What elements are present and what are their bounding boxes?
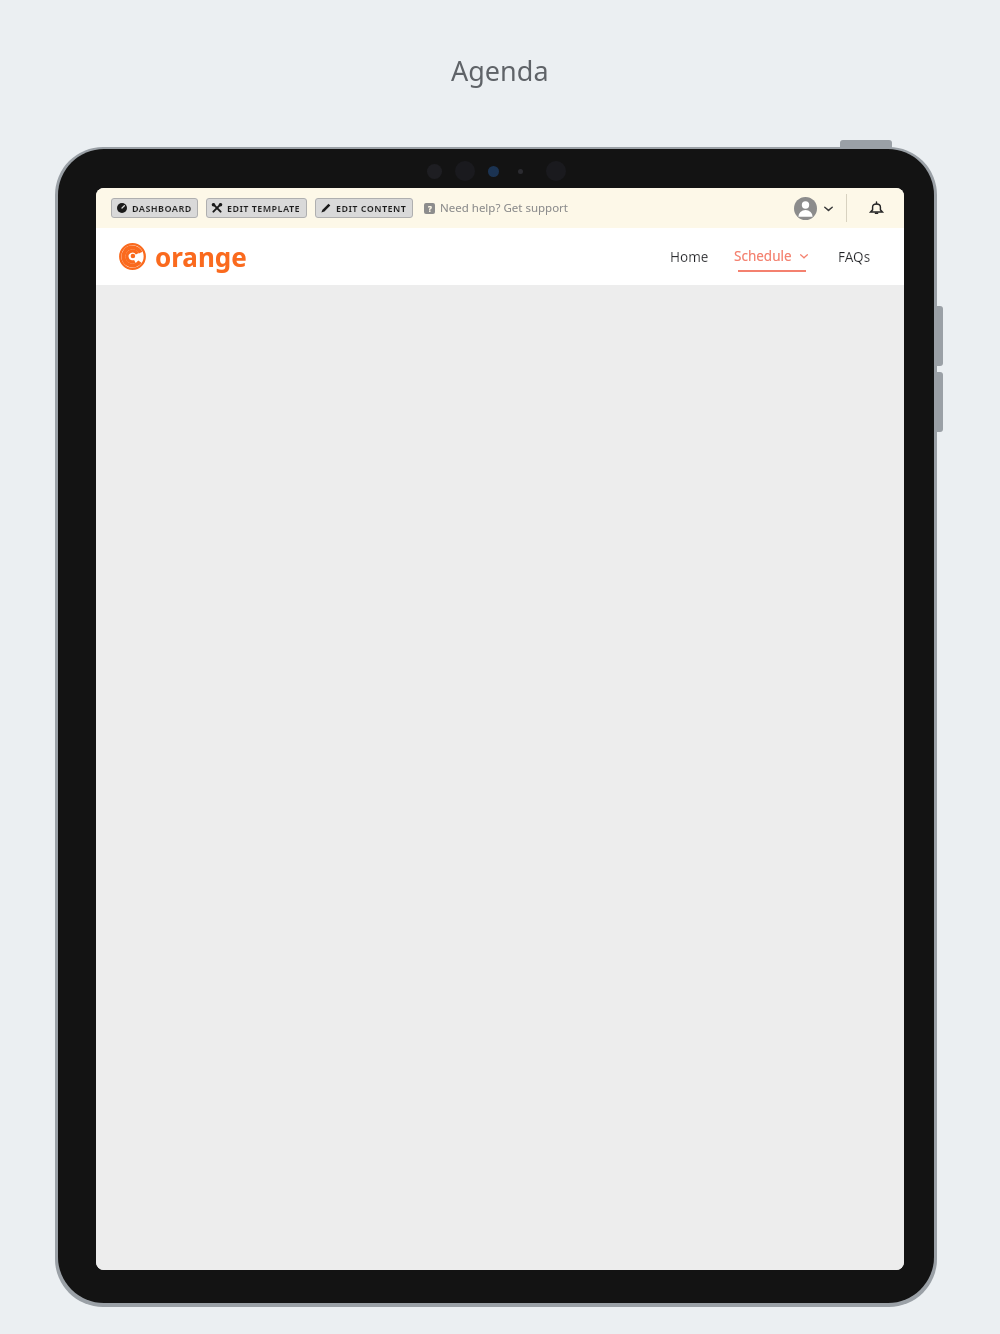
button[interactable]: ? xyxy=(424,200,569,216)
button[interactable]: Account menu xyxy=(794,197,834,220)
button[interactable]: Notifications xyxy=(863,195,889,221)
staticText: Schedule xyxy=(734,247,792,265)
staticText: EDIT TEMPLATE xyxy=(227,202,301,214)
staticText: Home xyxy=(670,248,709,266)
button[interactable]: Schedule xyxy=(727,242,816,272)
staticText: Need help? Get support xyxy=(440,200,569,216)
staticText: Agenda xyxy=(451,52,549,89)
staticText: ? xyxy=(428,203,432,214)
button[interactable]: EDIT TEMPLATE xyxy=(206,198,307,218)
staticText: EDIT CONTENT xyxy=(336,202,407,214)
button[interactable]: FAQs xyxy=(828,241,881,273)
button[interactable]: Home xyxy=(660,241,719,273)
button[interactable]: DASHBOARD xyxy=(111,198,198,218)
staticText: DASHBOARD xyxy=(132,202,192,214)
staticText: FAQs xyxy=(838,248,871,266)
button[interactable]: EDIT CONTENT xyxy=(315,198,413,218)
button[interactable]: orange xyxy=(119,239,247,274)
staticText: orange xyxy=(155,239,247,274)
